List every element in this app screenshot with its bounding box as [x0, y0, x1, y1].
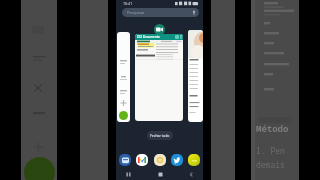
button[interactable]: Recent app — [21, 0, 57, 180]
button[interactable]: Add — [119, 111, 128, 120]
button[interactable]: Fechar tudo — [147, 131, 173, 140]
button[interactable]: Recent app — [117, 32, 130, 122]
staticText: 10:41 — [123, 1, 133, 6]
staticText: Pesquisar — [127, 10, 145, 15]
button[interactable]: Recent app — [188, 30, 203, 122]
staticText: XLS Documento — [137, 35, 160, 39]
staticText: demais — [256, 159, 285, 170]
button[interactable]: Messages — [119, 154, 131, 166]
button[interactable]: Gmail — [136, 154, 148, 166]
button[interactable]: Recents — [122, 169, 134, 180]
button[interactable]: Pesquisar — [122, 8, 199, 17]
button[interactable]: Recent app — [135, 34, 183, 121]
button[interactable]: Snapchat — [188, 154, 200, 166]
staticText: 1. Pen — [256, 145, 285, 156]
button[interactable]: Twitter — [171, 154, 183, 166]
button[interactable]: Add — [24, 157, 55, 180]
button[interactable]: App icon — [154, 24, 165, 35]
button[interactable]: Back — [185, 169, 197, 180]
button[interactable]: App — [154, 154, 166, 166]
staticText: Método — [256, 122, 289, 134]
button[interactable]: Recent app — [251, 0, 299, 180]
staticText: Fechar tudo — [150, 133, 170, 138]
button[interactable]: Home — [154, 169, 166, 180]
